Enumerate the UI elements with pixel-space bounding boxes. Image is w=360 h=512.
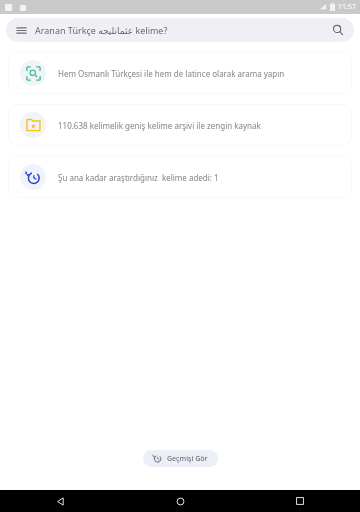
- staticText: Aranan Türkçe عثمانليجه kelime?: [35, 24, 168, 36]
- other: Search: [332, 24, 344, 36]
- button[interactable]: 110.638 kelimelik geniş kelime arşivi il…: [8, 104, 352, 146]
- button[interactable]: Menu: [6, 18, 354, 42]
- button[interactable]: Şu ana kadar araştırdığınız kelime adedi…: [8, 156, 352, 198]
- button[interactable]: Hem Osmanlı Türkçesi ile hem de latince …: [8, 52, 352, 94]
- button[interactable]: Recent apps: [240, 490, 360, 512]
- other: Menu: [16, 25, 27, 36]
- staticText: Hem Osmanlı Türkçesi ile hem de latince …: [58, 68, 285, 79]
- button[interactable]: Geçmişi Gör: [143, 450, 218, 467]
- staticText: 11:57: [338, 2, 356, 12]
- button[interactable]: Back: [0, 490, 120, 512]
- staticText: Şu ana kadar araştırdığınız kelime adedi…: [58, 172, 219, 183]
- staticText: Geçmişi Gör: [167, 454, 208, 464]
- staticText: 110.638 kelimelik geniş kelime arşivi il…: [58, 120, 261, 131]
- button[interactable]: Home: [120, 490, 240, 512]
